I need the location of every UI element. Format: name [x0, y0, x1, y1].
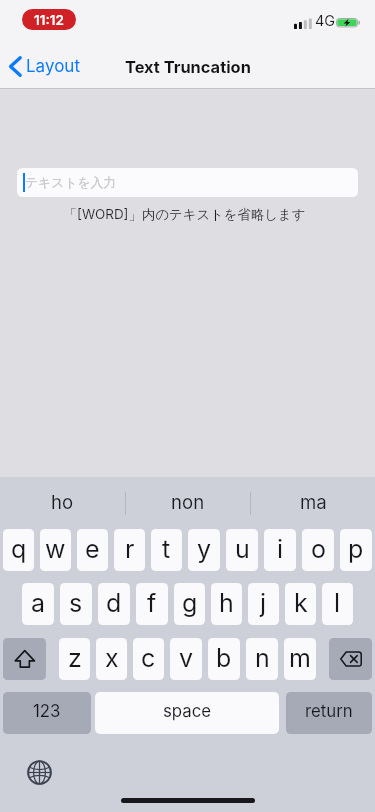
button[interactable]: i: [264, 529, 296, 571]
staticText: f: [147, 588, 157, 618]
button[interactable]: Backspace: [329, 638, 372, 680]
staticText: b: [216, 643, 232, 673]
button[interactable]: n: [246, 638, 278, 680]
staticText: l: [334, 588, 341, 618]
button[interactable]: c: [133, 638, 164, 680]
button[interactable]: テキストを入力: [17, 168, 358, 197]
button[interactable]: t: [151, 529, 182, 571]
staticText: 4G: [315, 12, 336, 30]
button[interactable]: Recording 11:12: [22, 9, 76, 30]
button[interactable]: r: [114, 529, 145, 571]
button[interactable]: z: [59, 638, 90, 680]
staticText: ma: [300, 491, 327, 514]
staticText: non: [171, 491, 205, 514]
staticText: 123: [33, 701, 61, 721]
staticText: s: [69, 588, 83, 618]
staticText: e: [85, 534, 100, 564]
staticText: テキストを入力: [25, 175, 117, 191]
button[interactable]: o: [302, 529, 334, 571]
staticText: 「[WORD]」内のテキストを省略します: [0, 206, 372, 223]
staticText: a: [31, 588, 46, 618]
button[interactable]: space: [95, 692, 279, 734]
button[interactable]: w: [40, 529, 71, 571]
button[interactable]: Change keyboard: [27, 760, 52, 785]
staticText: t: [162, 534, 171, 564]
staticText: u: [235, 534, 250, 564]
staticText: 11:12: [34, 12, 64, 28]
staticText: o: [311, 534, 326, 564]
button[interactable]: a: [22, 583, 54, 625]
button[interactable]: g: [174, 583, 205, 625]
staticText: Text Truncation: [125, 57, 251, 77]
button[interactable]: s: [60, 583, 92, 625]
button[interactable]: u: [226, 529, 258, 571]
staticText: g: [182, 588, 198, 618]
staticText: m: [289, 643, 311, 673]
button[interactable]: k: [285, 583, 316, 625]
button[interactable]: 123: [3, 692, 91, 734]
button[interactable]: e: [77, 529, 108, 571]
button[interactable]: x: [96, 638, 127, 680]
staticText: n: [255, 643, 270, 673]
staticText: w: [45, 534, 66, 564]
button[interactable]: Shift: [3, 638, 46, 680]
staticText: c: [141, 643, 156, 673]
staticText: q: [11, 534, 27, 564]
button[interactable]: y: [188, 529, 220, 571]
staticText: r: [125, 534, 135, 564]
button[interactable]: m: [284, 638, 316, 680]
staticText: x: [105, 643, 119, 673]
button[interactable]: v: [170, 638, 202, 680]
staticText: j: [260, 588, 267, 618]
button[interactable]: l: [322, 583, 353, 625]
staticText: Layout: [26, 56, 80, 77]
staticText: space: [163, 701, 212, 721]
staticText: i: [277, 534, 284, 564]
staticText: z: [68, 643, 82, 673]
button[interactable]: ma: [251, 477, 375, 523]
staticText: d: [106, 588, 122, 618]
button[interactable]: f: [136, 583, 168, 625]
button[interactable]: return: [286, 692, 372, 734]
staticText: v: [179, 643, 194, 673]
staticText: h: [219, 588, 234, 618]
button[interactable]: ho: [0, 477, 125, 523]
button[interactable]: p: [340, 529, 372, 571]
staticText: k: [294, 588, 308, 618]
button[interactable]: q: [3, 529, 34, 571]
button[interactable]: d: [98, 583, 130, 625]
staticText: y: [197, 534, 212, 564]
staticText: p: [348, 534, 364, 564]
button[interactable]: j: [248, 583, 279, 625]
staticText: return: [305, 701, 353, 721]
staticText: ho: [51, 491, 74, 514]
button[interactable]: h: [211, 583, 242, 625]
button[interactable]: non: [126, 477, 250, 523]
button[interactable]: Layout: [9, 44, 80, 89]
button[interactable]: b: [208, 638, 240, 680]
